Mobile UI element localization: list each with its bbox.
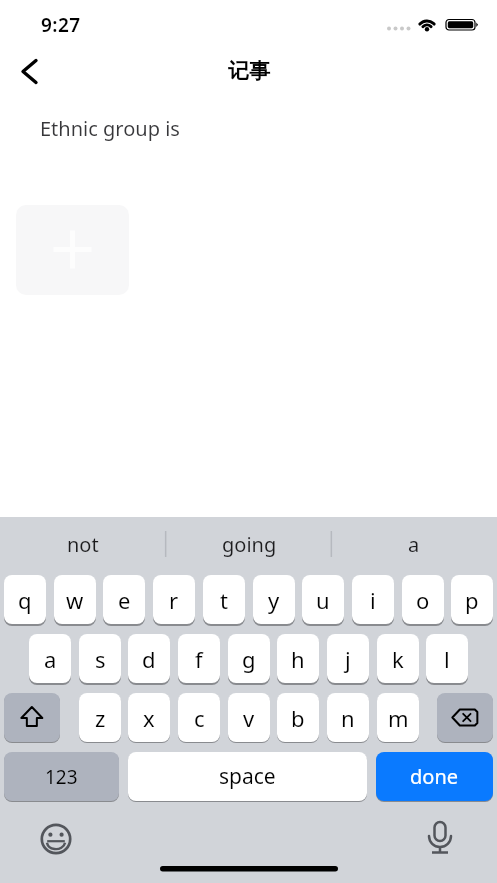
button[interactable]: p bbox=[451, 575, 493, 624]
button[interactable]: e bbox=[103, 575, 145, 624]
staticText: x bbox=[143, 703, 155, 733]
staticText: a bbox=[408, 531, 420, 558]
button[interactable] bbox=[8, 52, 48, 92]
button[interactable]: v bbox=[228, 693, 270, 742]
staticText: s bbox=[95, 644, 106, 674]
staticText: Ethnic group is bbox=[40, 115, 180, 142]
button[interactable]: 123 bbox=[4, 752, 119, 801]
button[interactable]: a bbox=[29, 634, 71, 683]
staticText: g bbox=[242, 644, 256, 674]
staticText: done bbox=[410, 763, 459, 790]
button[interactable]: done bbox=[376, 752, 493, 801]
staticText: k bbox=[392, 644, 404, 674]
button[interactable] bbox=[416, 815, 464, 863]
button[interactable]: m bbox=[377, 693, 419, 742]
staticText: q bbox=[18, 585, 32, 615]
button[interactable]: c bbox=[178, 693, 220, 742]
button[interactable]: j bbox=[327, 634, 369, 683]
staticText: m bbox=[388, 703, 409, 733]
button[interactable] bbox=[437, 693, 493, 742]
button[interactable]: t bbox=[203, 575, 245, 624]
staticText: o bbox=[416, 585, 430, 615]
button[interactable]: n bbox=[327, 693, 369, 742]
button[interactable]: a bbox=[331, 517, 497, 571]
staticText: 9:27 bbox=[41, 12, 81, 38]
button[interactable]: h bbox=[277, 634, 319, 683]
button[interactable]: b bbox=[277, 693, 319, 742]
button[interactable]: q bbox=[4, 575, 46, 624]
staticText: p bbox=[465, 585, 479, 615]
staticText: z bbox=[95, 703, 106, 733]
staticText: t bbox=[220, 585, 228, 615]
staticText: v bbox=[243, 703, 255, 733]
button[interactable]: space bbox=[128, 752, 367, 801]
button[interactable]: o bbox=[402, 575, 444, 624]
button[interactable]: d bbox=[128, 634, 170, 683]
staticText: h bbox=[291, 644, 305, 674]
button[interactable]: l bbox=[426, 634, 468, 683]
button[interactable]: k bbox=[377, 634, 419, 683]
staticText: 123 bbox=[45, 764, 78, 790]
staticText: space bbox=[219, 762, 276, 791]
button[interactable] bbox=[32, 815, 80, 863]
staticText: w bbox=[66, 585, 84, 615]
button[interactable]: f bbox=[178, 634, 220, 683]
staticText: a bbox=[44, 644, 57, 674]
staticText: 记事 bbox=[228, 58, 270, 84]
staticText: i bbox=[370, 585, 376, 615]
button[interactable] bbox=[4, 693, 60, 742]
button[interactable]: z bbox=[79, 693, 121, 742]
staticText: c bbox=[194, 703, 205, 733]
button[interactable]: y bbox=[253, 575, 295, 624]
button[interactable]: u bbox=[302, 575, 344, 624]
button[interactable]: w bbox=[54, 575, 96, 624]
staticText: n bbox=[341, 703, 355, 733]
staticText: r bbox=[169, 585, 179, 615]
button[interactable]: s bbox=[79, 634, 121, 683]
staticText: not bbox=[67, 531, 99, 558]
staticText: l bbox=[444, 644, 450, 674]
button[interactable]: not bbox=[0, 517, 166, 571]
staticText: j bbox=[345, 644, 351, 674]
button[interactable]: x bbox=[128, 693, 170, 742]
staticText: b bbox=[291, 703, 305, 733]
staticText: e bbox=[118, 585, 131, 615]
button[interactable]: i bbox=[352, 575, 394, 624]
button[interactable]: g bbox=[228, 634, 270, 683]
staticText: going bbox=[222, 531, 277, 558]
staticText: d bbox=[142, 644, 156, 674]
staticText: u bbox=[316, 585, 330, 615]
button[interactable]: going bbox=[166, 517, 332, 571]
staticText: f bbox=[195, 644, 203, 674]
staticText: y bbox=[268, 585, 280, 615]
button[interactable]: r bbox=[153, 575, 195, 624]
